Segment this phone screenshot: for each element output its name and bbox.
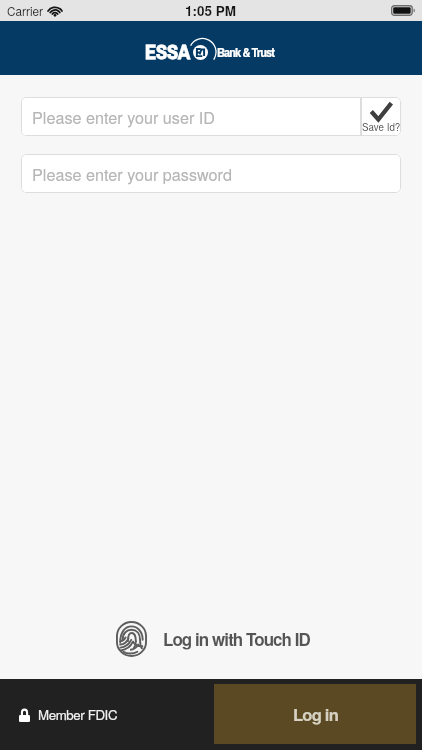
button[interactable]: Log in with Touch ID xyxy=(0,621,422,657)
staticText: Carrier xyxy=(7,2,44,19)
staticText: Bank & Trust xyxy=(217,43,274,61)
button[interactable]: Please enter your password xyxy=(21,154,401,193)
staticText: ESSA xyxy=(145,38,190,66)
staticText: Log in with Touch ID xyxy=(163,627,310,651)
button[interactable]: Member FDIC xyxy=(19,705,118,724)
staticText: 1:05 PM xyxy=(185,1,237,20)
staticText: Save Id? xyxy=(362,120,401,134)
staticText: Please enter your password xyxy=(32,162,232,185)
staticText: Log in xyxy=(293,702,338,726)
button[interactable]: Log in xyxy=(214,684,416,744)
staticText: Member FDIC xyxy=(38,705,118,724)
staticText: Please enter your user ID xyxy=(32,105,215,128)
button[interactable]: Please enter your user ID xyxy=(21,97,361,136)
button[interactable]: Save Id xyxy=(361,97,401,136)
